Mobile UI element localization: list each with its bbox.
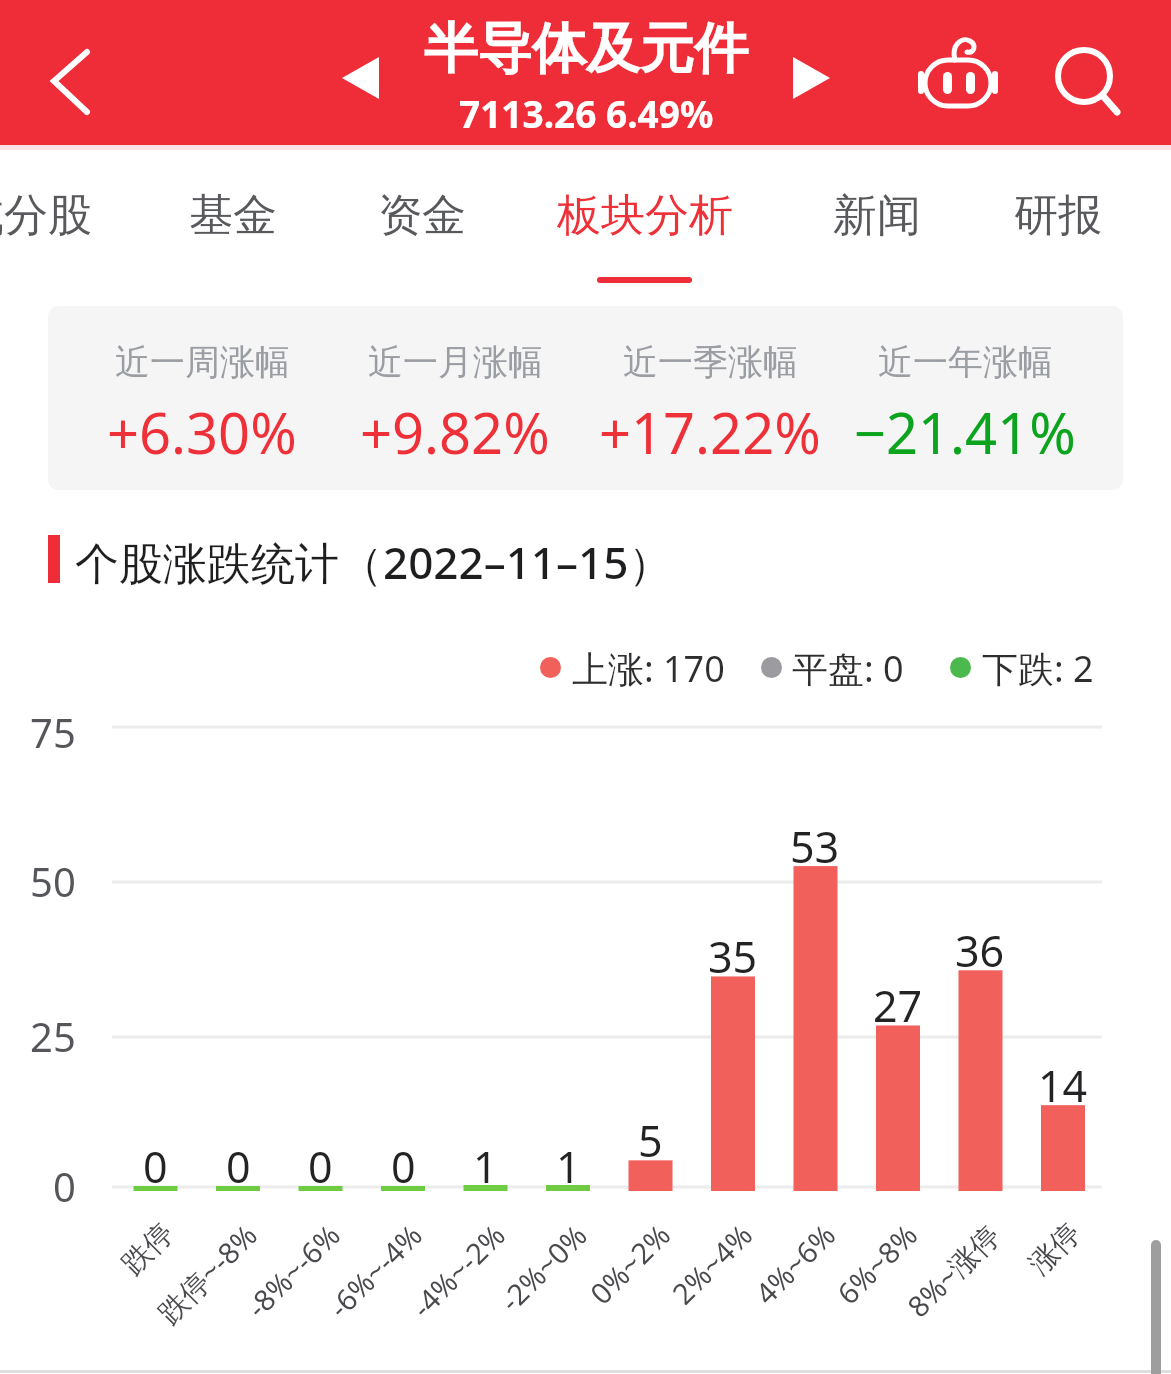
staticText: 研报 xyxy=(1014,188,1102,240)
staticText: 0%~2% xyxy=(581,1215,676,1310)
staticText: 2%~4% xyxy=(663,1215,758,1310)
staticText: 近一月涨幅 xyxy=(368,340,543,382)
button[interactable]: 新闻 xyxy=(777,188,977,240)
button[interactable]: 板块分析 xyxy=(545,188,745,240)
staticText: 基金 xyxy=(189,188,277,240)
staticText: 资金 xyxy=(378,188,466,240)
staticText: 35 xyxy=(708,927,758,975)
staticText: 27 xyxy=(873,976,923,1024)
staticText: 近一周涨幅 xyxy=(115,340,290,382)
staticText: 14 xyxy=(1038,1056,1088,1104)
staticText: -2%~0% xyxy=(491,1215,593,1317)
staticText: +9.82% xyxy=(360,394,550,454)
staticText: 新闻 xyxy=(833,188,921,240)
button[interactable]: 研报 xyxy=(958,188,1158,240)
staticText: 0 xyxy=(308,1137,333,1185)
staticText: 半导体及元件 xyxy=(424,15,748,71)
staticText: 0 xyxy=(143,1137,168,1185)
staticText: 1 xyxy=(473,1137,498,1185)
staticText: +6.30% xyxy=(107,394,297,454)
staticText: 53 xyxy=(790,817,840,865)
staticText: 跌停~-8% xyxy=(149,1215,263,1329)
staticText: 1 xyxy=(556,1137,581,1185)
staticText: 成分股 xyxy=(0,188,92,240)
staticText: −21.41% xyxy=(854,394,1076,454)
staticText: 个股涨跌统计（2022–11–15） xyxy=(75,532,673,586)
staticText: 75 xyxy=(30,705,76,749)
staticText: +17.22% xyxy=(599,394,821,454)
staticText: -8%~-6% xyxy=(237,1215,346,1323)
staticText: 0 xyxy=(226,1137,251,1185)
staticText: 25 xyxy=(30,1009,76,1053)
button[interactable]: 资金 xyxy=(322,188,522,240)
staticText: 涨停 xyxy=(1021,1215,1088,1282)
staticText: 0 xyxy=(53,1159,76,1203)
staticText: 上涨: 170 xyxy=(572,644,725,690)
button[interactable] xyxy=(781,50,841,110)
staticText: -6%~-4% xyxy=(319,1215,428,1323)
staticText: 7113.26 6.49% xyxy=(459,88,714,136)
staticText: 跌停 xyxy=(114,1215,181,1282)
staticText: 6%~8% xyxy=(828,1215,923,1310)
staticText: 50 xyxy=(30,854,76,898)
staticText: 5 xyxy=(638,1111,663,1159)
staticText: 0 xyxy=(391,1137,416,1185)
button[interactable] xyxy=(30,40,110,120)
staticText: 36 xyxy=(955,921,1005,969)
staticText: 近一季涨幅 xyxy=(623,340,798,382)
staticText: -4%~-2% xyxy=(402,1215,511,1323)
button[interactable] xyxy=(1048,38,1128,122)
button[interactable] xyxy=(917,34,1001,118)
staticText: 8%~涨停 xyxy=(898,1215,1006,1323)
button[interactable]: 基金 xyxy=(133,188,333,240)
staticText: 平盘: 0 xyxy=(792,644,904,690)
staticText: 板块分析 xyxy=(557,188,733,240)
staticText: 下跌: 2 xyxy=(982,644,1094,690)
button[interactable] xyxy=(330,50,390,110)
staticText: 近一年涨幅 xyxy=(878,340,1053,382)
staticText: 4%~6% xyxy=(746,1215,841,1310)
